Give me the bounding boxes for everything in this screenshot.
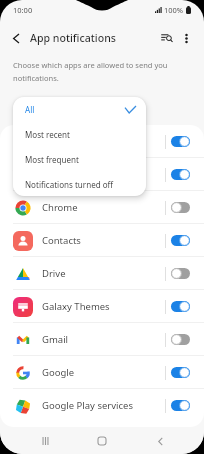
staticText: Google Play services [42,399,165,412]
button[interactable]: Home [89,428,115,454]
staticText: Gmail [42,333,165,346]
button[interactable] [171,268,190,279]
button[interactable]: Recents [32,428,58,454]
staticText: 100% [164,5,184,15]
staticText: Camera [42,168,165,181]
staticText: Chrome [42,201,165,214]
button[interactable]: Contacts [0,224,204,257]
button[interactable]: Search [156,27,178,49]
staticText: Drive [42,267,165,280]
button[interactable]: Calendar [0,125,204,158]
staticText: Contacts [42,234,165,247]
staticText: Galaxy Themes [42,300,165,313]
staticText: Calendar [42,135,165,148]
button[interactable] [171,202,190,213]
staticText: Choose which apps are allowed to send yo… [13,60,186,83]
button[interactable] [171,301,190,312]
staticText: Notifications turned off [25,179,114,190]
button[interactable]: Most frequent [13,147,146,172]
button[interactable]: Camera [0,158,204,191]
staticText: App notifications [30,31,116,45]
button[interactable]: All [13,97,146,122]
button[interactable] [171,334,190,345]
button[interactable]: Most recent [13,122,146,147]
button[interactable]: Galaxy Themes [0,290,204,323]
button[interactable]: Notifications turned off [13,172,146,196]
button[interactable]: Drive [0,257,204,290]
button[interactable] [171,136,190,147]
button[interactable]: Back [5,27,27,49]
staticText: All [25,104,35,115]
button[interactable] [171,235,190,246]
button[interactable]: Back [147,428,173,454]
button[interactable] [171,367,190,378]
staticText: Most frequent [25,154,79,165]
button[interactable]: Chrome [0,191,204,224]
staticText: 10:00 [13,5,33,15]
button[interactable]: Google [0,356,204,389]
button[interactable]: More options [178,27,194,49]
button[interactable] [171,169,190,180]
button[interactable]: Google Play services [0,389,204,422]
staticText: Google [42,366,165,379]
button[interactable] [171,400,190,411]
staticText: Most recent [25,129,70,140]
button[interactable]: Gmail [0,323,204,356]
